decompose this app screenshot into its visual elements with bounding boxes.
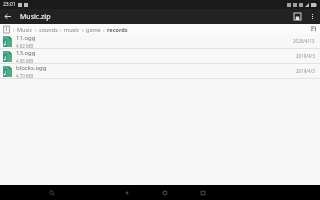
staticText: 2019/4/3 (296, 53, 315, 59)
button[interactable]: Save archive (290, 9, 305, 24)
staticText: › (35, 26, 37, 33)
staticText: blocks.ogg (16, 64, 47, 72)
staticText: 4.06 MB (16, 58, 34, 63)
staticText: 4.02 MB (16, 43, 34, 48)
staticText: 23:01 (3, 1, 16, 8)
button[interactable]: More options (305, 9, 320, 24)
button[interactable]: Home (159, 187, 171, 199)
staticText: › (13, 26, 15, 33)
button[interactable]: Search (46, 187, 58, 199)
button[interactable]: Back (121, 187, 133, 199)
button[interactable]: 11.ogg (0, 34, 320, 48)
staticText: 2019/4/3 (296, 68, 315, 74)
button[interactable]: Back (0, 9, 15, 24)
staticText: 2020/4/13 (293, 38, 315, 44)
staticText: 13.ogg (16, 49, 36, 57)
staticText: game (86, 26, 101, 33)
button[interactable]: blocks.ogg (0, 64, 320, 78)
staticText: › (82, 26, 84, 33)
button[interactable]: Sort (308, 24, 318, 34)
staticText: Music (17, 26, 33, 33)
staticText: music (64, 26, 80, 33)
staticText: › (60, 26, 62, 33)
staticText: › (103, 26, 105, 33)
staticText: sounds (39, 26, 58, 33)
button[interactable]: Recents (197, 187, 209, 199)
staticText: 4.70 MB (16, 73, 34, 78)
button[interactable]: › (0, 24, 320, 34)
staticText: Music.zip (20, 12, 51, 22)
staticText: records (107, 26, 128, 33)
staticText: 11.ogg (16, 34, 36, 42)
button[interactable]: 13.ogg (0, 49, 320, 63)
